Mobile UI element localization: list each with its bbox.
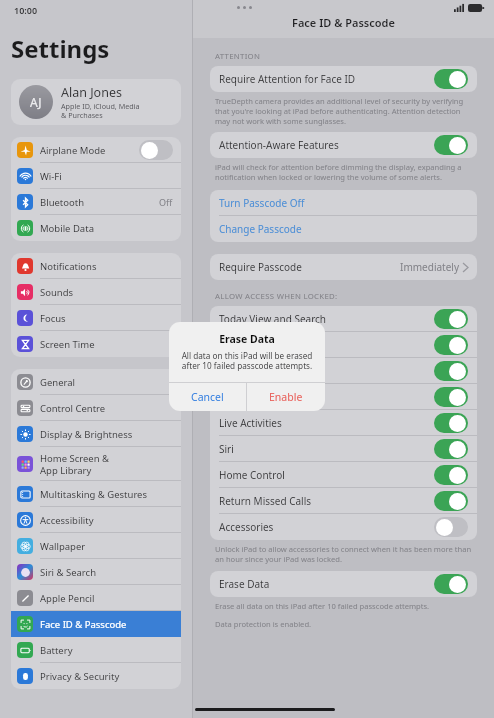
button[interactable]: Today View and Search	[210, 306, 477, 332]
button[interactable]: Cancel	[169, 383, 246, 411]
button[interactable]: Wallpaper	[11, 533, 181, 559]
staticText: General	[40, 376, 173, 389]
button[interactable]: Change Passcode	[210, 216, 477, 242]
button[interactable]: Home Screen & App Library	[11, 447, 181, 481]
staticText: Today View and Search	[219, 312, 434, 326]
button[interactable]: On	[434, 309, 468, 329]
button[interactable]: Sounds	[11, 279, 181, 305]
staticText: Turn Passcode Off	[219, 196, 305, 210]
button[interactable]: General	[11, 369, 181, 395]
button[interactable]: Display & Brightness	[11, 421, 181, 447]
staticText: Wi-Fi	[40, 170, 173, 183]
button[interactable]: Privacy & Security	[11, 663, 181, 689]
staticText: Siri	[219, 442, 434, 456]
staticText: Alan Jones	[61, 84, 122, 101]
staticText: Privacy & Security	[40, 670, 173, 683]
button[interactable]: Control Centre	[11, 395, 181, 421]
button[interactable]: Bluetooth	[11, 189, 181, 215]
button[interactable]: Lock Screen Widgets	[210, 384, 477, 410]
staticText: Accessibility	[40, 514, 173, 527]
button[interactable]: Accessories	[210, 514, 477, 540]
button[interactable]: Multitasking & Gestures	[11, 481, 181, 507]
button[interactable]: Off	[434, 517, 468, 537]
button[interactable]: AJ	[11, 79, 181, 125]
button[interactable]: On	[434, 491, 468, 511]
staticText: Cancel	[191, 390, 224, 404]
button[interactable]: On	[434, 135, 468, 155]
staticText: TrueDepth camera provides an additional …	[215, 96, 464, 126]
staticText: Apple ID, iCloud, Media & Purchases	[61, 101, 140, 120]
staticText: Home Control	[219, 468, 434, 482]
button[interactable]: Apple Pencil	[11, 585, 181, 611]
button[interactable]: Screen Time	[11, 331, 181, 357]
button[interactable]: Face ID & Passcode	[11, 611, 181, 637]
button[interactable]: Control Centre	[210, 358, 477, 384]
staticText: ATTENTION	[215, 51, 261, 62]
button[interactable]: On	[434, 335, 468, 355]
staticText: Require Attention for Face ID	[219, 72, 434, 86]
staticText: Enable	[269, 390, 303, 404]
button[interactable]: Airplane Mode	[11, 137, 181, 163]
button[interactable]: Mobile Data	[11, 215, 181, 241]
staticText: Notifications	[40, 260, 173, 273]
staticText: Display & Brightness	[40, 428, 173, 441]
button[interactable]: Siri & Search	[11, 559, 181, 585]
staticText: Apple Pencil	[40, 592, 173, 605]
staticText: Bluetooth	[40, 196, 159, 209]
staticText: Control Centre	[219, 364, 434, 378]
staticText: Erase Data	[219, 577, 434, 591]
button[interactable]: Wi-Fi	[11, 163, 181, 189]
button[interactable]: Enable	[247, 383, 325, 411]
button[interactable]: On	[434, 361, 468, 381]
staticText: Attention-Aware Features	[219, 138, 434, 152]
staticText: Erase all data on this iPad after 10 fai…	[215, 601, 430, 611]
staticText: Siri & Search	[40, 566, 173, 579]
staticText: Screen Time	[40, 338, 173, 351]
button[interactable]: Require Attention for Face ID	[210, 66, 477, 92]
staticText: Erase Data	[169, 332, 325, 346]
staticText: AJ	[30, 94, 42, 110]
button[interactable]: On	[434, 574, 468, 594]
staticText: Sounds	[40, 286, 173, 299]
button[interactable]: Turn Passcode Off	[210, 190, 477, 216]
button[interactable]: Live Activities	[210, 410, 477, 436]
staticText: iPad will check for attention before dim…	[215, 162, 462, 182]
button[interactable]: Notifications	[11, 253, 181, 279]
staticText: Live Activities	[219, 416, 434, 430]
staticText: Data protection is enabled.	[215, 619, 312, 629]
staticText: Wallpaper	[40, 540, 173, 553]
staticText: Focus	[40, 312, 173, 325]
staticText: Change Passcode	[219, 222, 302, 236]
button[interactable]: On	[434, 439, 468, 459]
staticText: Home Screen & App Library	[40, 452, 173, 476]
staticText: ALLOW ACCESS WHEN LOCKED:	[215, 291, 338, 302]
staticText: Airplane Mode	[40, 144, 139, 157]
button[interactable]: Erase Data	[210, 571, 477, 597]
button[interactable]: On	[434, 465, 468, 485]
button[interactable]: On	[434, 69, 468, 89]
staticText: Accessories	[219, 520, 434, 534]
button[interactable]: Require Passcode	[210, 254, 477, 280]
staticText: Battery	[40, 644, 173, 657]
staticText: 10:00	[14, 4, 38, 16]
button[interactable]: Siri	[210, 436, 477, 462]
staticText: Mobile Data	[40, 222, 173, 235]
button[interactable]: On	[434, 413, 468, 433]
staticText: All data on this iPad will be erased aft…	[177, 350, 317, 372]
staticText: Notification Centre	[219, 338, 434, 352]
staticText: Multitasking & Gestures	[40, 488, 173, 501]
staticText: Face ID & Passcode	[292, 15, 395, 30]
staticText: Off	[159, 196, 173, 208]
button[interactable]: Off	[139, 140, 173, 160]
button[interactable]: Accessibility	[11, 507, 181, 533]
button[interactable]: Return Missed Calls	[210, 488, 477, 514]
staticText: Face ID & Passcode	[40, 618, 173, 631]
button[interactable]: Notification Centre	[210, 332, 477, 358]
staticText: Return Missed Calls	[219, 494, 434, 508]
button[interactable]: Attention-Aware Features	[210, 132, 477, 158]
button[interactable]: Focus	[11, 305, 181, 331]
button[interactable]: On	[434, 387, 468, 407]
button[interactable]: Home Control	[210, 462, 477, 488]
button[interactable]: Battery	[11, 637, 181, 663]
staticText: Lock Screen Widgets	[219, 390, 434, 404]
